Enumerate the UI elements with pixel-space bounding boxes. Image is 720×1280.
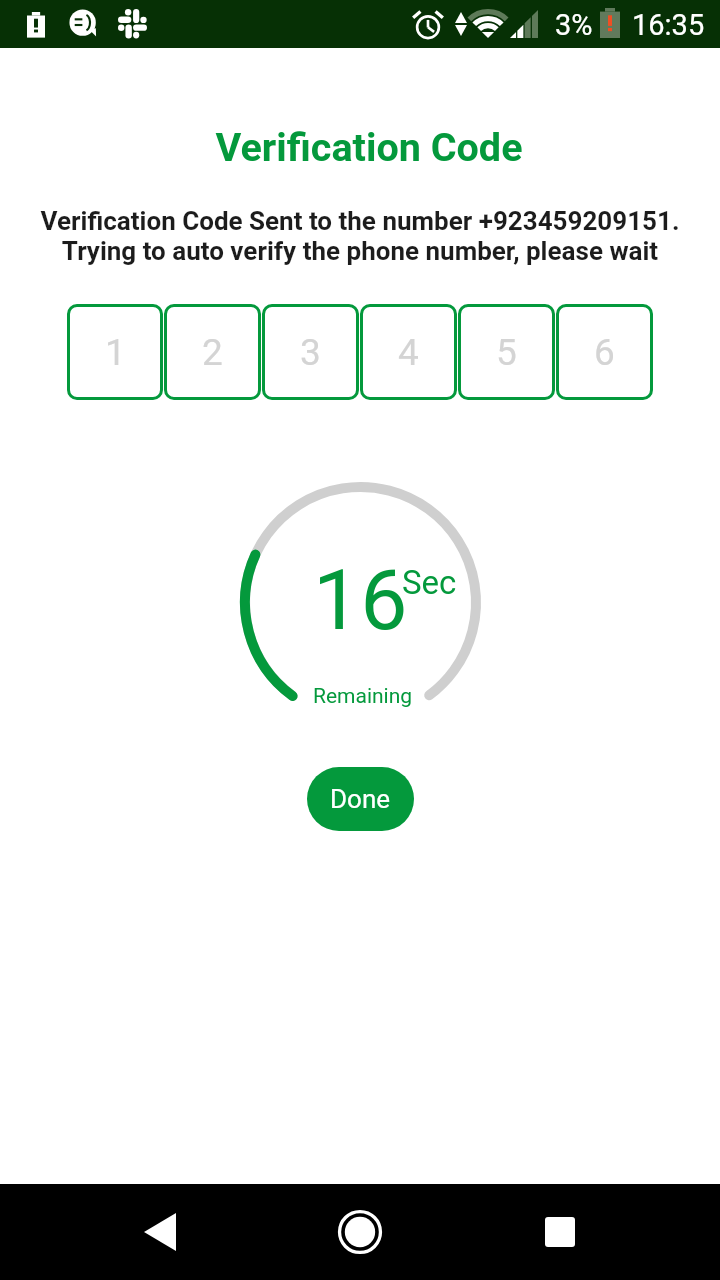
button[interactable]: 2 — [164, 304, 261, 400]
button[interactable]: 1 — [67, 304, 163, 400]
staticText: 1 — [105, 331, 126, 374]
staticText: Done — [330, 784, 391, 814]
button[interactable]: 3 — [262, 304, 359, 400]
staticText: 5 — [496, 331, 517, 374]
staticText: 4 — [398, 331, 419, 374]
staticText: 16 — [313, 551, 408, 649]
staticText: Verification Code — [9, 124, 720, 170]
staticText: 2 — [202, 331, 223, 374]
button[interactable]: 6 — [556, 304, 653, 400]
staticText: 3 — [300, 331, 321, 374]
staticText: 16:35 — [632, 8, 705, 42]
button[interactable]: 4 — [360, 304, 457, 400]
staticText: Verification Code Sent to the number +92… — [0, 206, 720, 266]
button[interactable]: Done — [307, 767, 414, 831]
button[interactable]: Home — [260, 1184, 460, 1280]
staticText: Remaining — [313, 684, 413, 709]
staticText: 6 — [594, 331, 615, 374]
staticText: Sec — [402, 563, 457, 602]
button[interactable]: 5 — [458, 304, 555, 400]
button[interactable]: Recents — [460, 1184, 660, 1280]
staticText: 3% — [555, 8, 593, 42]
button[interactable]: Back — [60, 1184, 260, 1280]
